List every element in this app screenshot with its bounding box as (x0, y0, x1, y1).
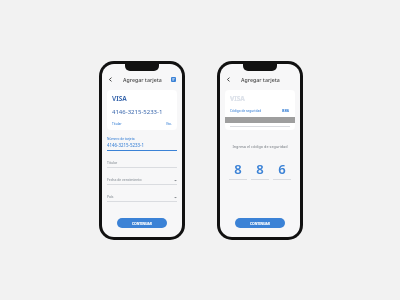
staticText: VISA (230, 94, 245, 103)
staticText: Número de tarjeta (107, 137, 135, 141)
button[interactable]: CONTINUAR (235, 218, 285, 228)
staticText: 4146-3215-5233-1 (107, 142, 144, 148)
staticText: Fecha de vencimiento (107, 177, 142, 182)
button[interactable]: Card info (169, 75, 178, 84)
staticText: 8 (229, 160, 247, 178)
button[interactable]: Número de tarjeta (107, 137, 177, 151)
staticText: Código de seguridad (230, 109, 262, 113)
button[interactable]: CONTINUAR (117, 218, 167, 228)
staticText: VISA (112, 94, 127, 103)
button[interactable]: 8 (229, 160, 247, 180)
staticText: Vto. (166, 122, 172, 126)
button[interactable]: Back (106, 75, 115, 84)
staticText: País (107, 194, 114, 199)
button[interactable]: 8 (251, 160, 269, 180)
staticText: 4146-3215-5233-1 (112, 108, 163, 116)
staticText: 8 (251, 160, 269, 178)
button[interactable]: Back (224, 75, 233, 84)
staticText: Titular (107, 160, 118, 165)
staticText: 6 (273, 160, 291, 178)
staticText: 886 (282, 108, 290, 114)
button[interactable]: 6 (273, 160, 291, 180)
staticText: Titular (112, 122, 122, 126)
button[interactable]: Fecha de vencimiento (107, 177, 177, 185)
staticText: Ingresa el código de seguridad (220, 144, 300, 149)
button[interactable]: País (107, 194, 177, 202)
staticText: CONTINUAR (250, 221, 270, 226)
staticText: CONTINUAR (132, 221, 152, 226)
staticText: Agregar tarjeta (241, 76, 280, 83)
staticText: Agregar tarjeta (123, 76, 162, 83)
button[interactable]: Titular (107, 160, 177, 168)
